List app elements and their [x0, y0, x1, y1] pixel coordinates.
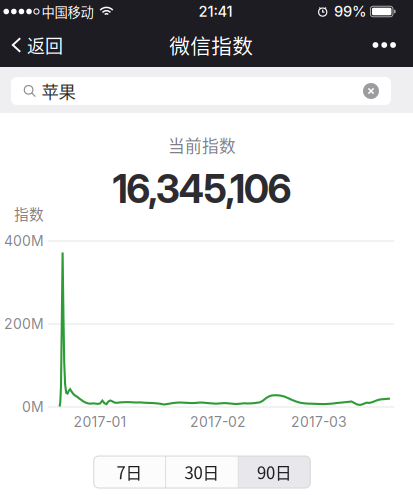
staticText: 苹果 [41, 78, 75, 104]
staticText: 指数 [14, 203, 44, 224]
button[interactable]: 30日 [166, 456, 238, 488]
staticText: 返回 [27, 32, 63, 58]
staticText: 90日 [257, 460, 292, 484]
staticText: 200M [4, 315, 44, 332]
staticText: 21:41 [198, 3, 232, 20]
staticText: 7日 [116, 460, 142, 484]
staticText: 当前指数 [168, 133, 236, 157]
staticText: 2017-02 [190, 413, 246, 430]
staticText: 中国移动 [41, 2, 93, 21]
staticText: 2017-01 [73, 413, 126, 430]
button[interactable]: 苹果 [11, 77, 391, 105]
staticText: 2017-03 [291, 413, 347, 430]
staticText: 0M [22, 398, 44, 415]
staticText: 99% [334, 3, 367, 20]
button[interactable]: More options [357, 23, 413, 67]
staticText: 30日 [184, 460, 219, 484]
staticText: 微信指数 [169, 30, 253, 60]
button[interactable]: 7日 [94, 456, 165, 488]
button[interactable]: 90日 [239, 456, 310, 488]
button[interactable]: 返回 [0, 23, 75, 67]
staticText: 16,345,106 [112, 166, 292, 212]
staticText: 400M [4, 232, 44, 249]
